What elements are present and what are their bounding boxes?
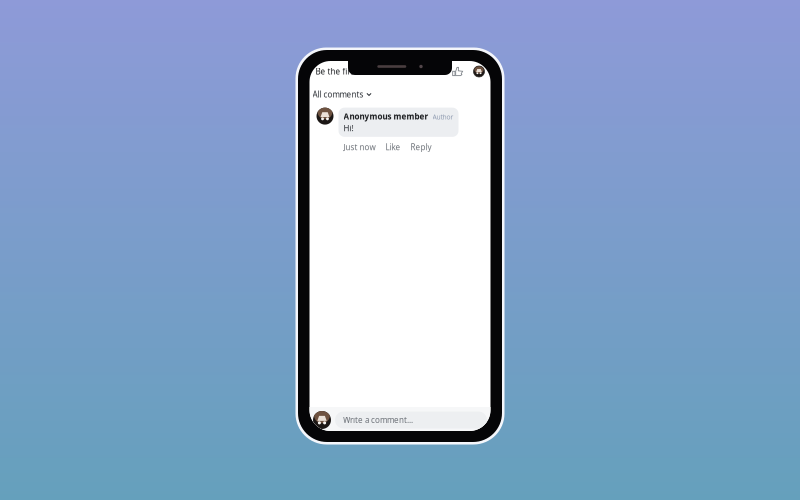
button[interactable]: Like	[381, 139, 404, 155]
button[interactable]: Anonymous member	[338, 108, 458, 137]
staticText: Be the first to comment	[315, 66, 405, 77]
staticText: Just now	[343, 142, 375, 152]
staticText: Reply	[410, 142, 431, 152]
staticText: Hi!	[343, 123, 353, 133]
button[interactable]: Your profile	[313, 411, 331, 429]
staticText: Anonymous member	[343, 111, 428, 122]
button[interactable]: Anonymous member profile	[316, 108, 333, 125]
button[interactable]: Just now	[339, 139, 379, 155]
staticText: Write a comment...	[343, 415, 413, 425]
button[interactable]: Write a comment...	[335, 411, 487, 428]
staticText: All comments	[312, 89, 363, 100]
button[interactable]: Your profile	[464, 66, 484, 77]
button[interactable]: Like	[451, 65, 464, 78]
staticText: Like	[385, 142, 400, 152]
staticText: Author	[432, 112, 453, 121]
button[interactable]: All comments	[309, 86, 374, 103]
button[interactable]: Reply	[406, 139, 435, 155]
